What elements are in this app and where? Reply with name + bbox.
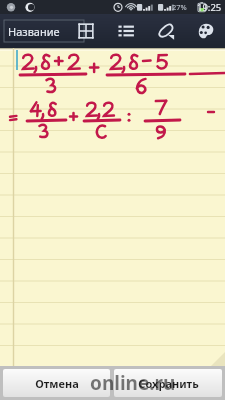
staticText: Отмена (35, 376, 79, 391)
staticText: Сохранить (138, 376, 199, 391)
staticText: online.ru (90, 370, 176, 396)
button[interactable]: List (113, 18, 139, 44)
button[interactable]: Colour (193, 18, 219, 44)
staticText: Название (8, 24, 60, 39)
button[interactable]: Attach (153, 18, 179, 44)
button[interactable]: Отмена (3, 369, 110, 397)
button[interactable]: Insert table (73, 18, 99, 44)
button[interactable]: Название (4, 20, 84, 42)
staticText: 19:25 (197, 1, 222, 14)
staticText: 27% (172, 2, 187, 12)
button[interactable]: Сохранить (114, 369, 222, 397)
